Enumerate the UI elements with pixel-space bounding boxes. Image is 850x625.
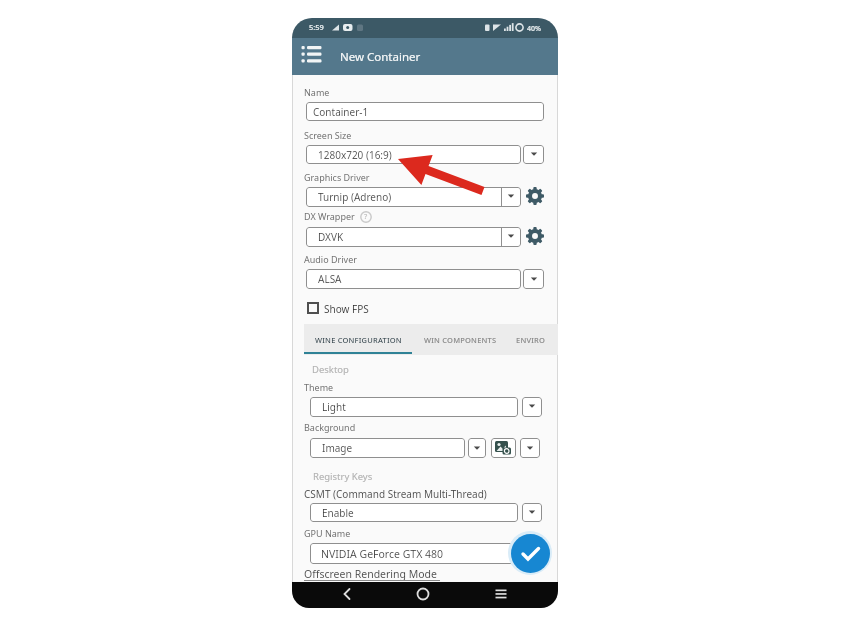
staticText: Image: [322, 441, 353, 455]
button[interactable]: Turnip (Adreno): [306, 187, 521, 207]
button[interactable]: [338, 585, 356, 603]
button[interactable]: Image: [310, 438, 465, 458]
staticText: ENVIRO: [516, 335, 546, 345]
staticText: WIN COMPONENTS: [424, 335, 497, 345]
button[interactable]: ENVIRO: [514, 324, 558, 355]
staticText: Name: [304, 86, 330, 98]
staticText: DXVK: [318, 230, 344, 244]
staticText: Light: [322, 400, 346, 414]
button[interactable]: ALSA: [306, 269, 521, 289]
staticText: Container-1: [313, 105, 369, 119]
staticText: 5:59: [309, 22, 324, 32]
button[interactable]: [520, 438, 540, 458]
button[interactable]: DXVK: [306, 227, 521, 247]
button[interactable]: [492, 585, 510, 603]
staticText: Show FPS: [324, 302, 369, 316]
button[interactable]: [523, 145, 544, 164]
button[interactable]: [298, 44, 326, 68]
staticText: WINE CONFIGURATION: [315, 335, 402, 345]
staticText: ALSA: [318, 272, 342, 286]
button[interactable]: Enable: [310, 503, 518, 522]
button[interactable]: NVIDIA GeForce GTX 480: [310, 543, 518, 564]
staticText: Offscreen Rendering Mode: [304, 567, 437, 581]
button[interactable]: [491, 438, 516, 458]
button[interactable]: [468, 438, 486, 458]
staticText: Enable: [322, 506, 354, 520]
staticText: GPU Name: [304, 527, 351, 539]
button[interactable]: [511, 534, 550, 573]
staticText: Background: [304, 421, 356, 433]
staticText: 1280x720 (16:9): [318, 148, 392, 162]
staticText: CSMT (Command Stream Multi-Thread): [304, 487, 487, 501]
button[interactable]: [307, 302, 319, 314]
staticText: ?: [364, 211, 368, 221]
staticText: Graphics Driver: [304, 171, 370, 183]
staticText: Registry Keys: [313, 470, 373, 483]
button[interactable]: [523, 269, 544, 289]
staticText: Audio Driver: [304, 253, 357, 265]
button[interactable]: [414, 585, 432, 603]
button[interactable]: 1280x720 (16:9): [306, 145, 521, 164]
button[interactable]: Container-1: [306, 102, 544, 121]
button[interactable]: [522, 397, 542, 417]
staticText: Screen Size: [304, 129, 352, 141]
staticText: Turnip (Adreno): [318, 190, 392, 204]
staticText: Theme: [304, 381, 334, 393]
button[interactable]: [522, 503, 542, 522]
button[interactable]: WIN COMPONENTS: [415, 324, 505, 355]
staticText: New Container: [340, 49, 421, 65]
staticText: NVIDIA GeForce GTX 480: [321, 547, 444, 561]
staticText: DX Wrapper: [304, 210, 355, 222]
staticText: Desktop: [312, 363, 349, 376]
button[interactable]: WINE CONFIGURATION: [304, 324, 412, 355]
button[interactable]: Light: [310, 397, 518, 417]
staticText: 40%: [527, 24, 541, 34]
